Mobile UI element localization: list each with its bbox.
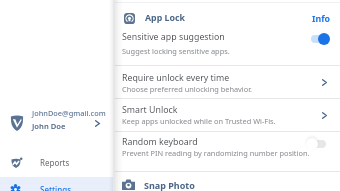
staticText: Smart Unlock (122, 104, 178, 116)
button[interactable]: Settings (0, 177, 113, 191)
other: Toggle off (307, 138, 326, 150)
staticText: App Lock (145, 12, 185, 24)
button[interactable]: Random keyboard (115, 131, 340, 171)
staticText: JohnDoe@gmail.com (32, 108, 106, 118)
button[interactable]: JohnDoe@gmail.com (0, 106, 113, 136)
staticText: Prevent PIN reading by randomizing numbe… (122, 148, 310, 158)
staticText: Choose preferred unlocking behavior. (122, 84, 253, 94)
button[interactable]: Reports (0, 152, 113, 177)
staticText: Snap Photo (144, 179, 195, 191)
staticText: Keep apps unlocked while on Trusted Wi-F… (122, 116, 276, 126)
staticText: Sensitive app suggestion (122, 31, 225, 43)
staticText: Require unlock every time (122, 72, 230, 84)
button[interactable]: Sensitive app suggestion (115, 27, 340, 65)
button[interactable]: Info (308, 9, 335, 29)
staticText: Suggest locking sensitive apps. (122, 46, 230, 56)
staticText: Info (312, 13, 331, 25)
staticText: Settings (40, 184, 72, 191)
other: Toggle on (310, 33, 329, 45)
button[interactable]: Smart Unlock (115, 98, 340, 131)
button[interactable]: Require unlock every time (115, 65, 340, 98)
staticText: Reports (40, 157, 70, 168)
staticText: Random keyboard (122, 136, 198, 148)
staticText: John Doe (32, 121, 66, 131)
